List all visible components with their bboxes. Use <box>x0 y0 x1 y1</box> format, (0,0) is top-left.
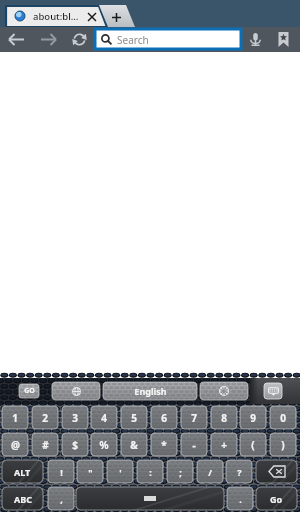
button[interactable]: 2 <box>32 406 58 429</box>
staticText: 1 <box>12 411 18 425</box>
staticText: about:bl… <box>33 10 79 23</box>
button[interactable] <box>200 382 248 400</box>
staticText: # <box>42 438 49 452</box>
staticText: Search <box>117 33 149 47</box>
button[interactable]: Voice search <box>243 27 268 52</box>
button[interactable]: Reload <box>67 27 92 52</box>
staticText: * <box>161 438 167 452</box>
staticText: GO <box>24 386 35 396</box>
button[interactable]: Hide keyboard <box>264 383 282 399</box>
button[interactable]: New tab <box>99 5 135 27</box>
button[interactable]: & <box>121 433 147 456</box>
staticText: " <box>88 466 93 478</box>
staticText: ? <box>237 466 242 478</box>
button[interactable]: ( <box>240 433 266 456</box>
button[interactable]: " <box>77 460 103 483</box>
staticText: ; <box>179 466 182 478</box>
button[interactable]: : <box>137 460 163 483</box>
staticText: $ <box>72 438 78 452</box>
button[interactable]: Bookmarks <box>271 27 296 52</box>
button[interactable]: 3 <box>62 406 88 429</box>
button[interactable]: 0 <box>270 406 296 429</box>
staticText: @ <box>11 438 20 452</box>
staticText: ' <box>119 466 122 478</box>
button[interactable]: * <box>151 433 177 456</box>
button[interactable]: English <box>103 382 197 400</box>
staticText: 0 <box>280 411 286 425</box>
staticText: & <box>130 438 138 452</box>
staticText: ) <box>281 438 285 452</box>
staticText: 3 <box>72 411 78 425</box>
button[interactable]: 9 <box>240 406 266 429</box>
button[interactable]: ABC <box>2 487 43 510</box>
button[interactable]: Forward <box>36 27 61 52</box>
button[interactable]: 8 <box>211 406 237 429</box>
button[interactable]: $ <box>62 433 88 456</box>
button[interactable]: + <box>211 433 237 456</box>
staticText: + <box>221 438 227 452</box>
staticText: / <box>208 466 212 478</box>
button[interactable]: ) <box>270 433 296 456</box>
staticText: 2 <box>42 411 48 425</box>
button[interactable]: - <box>181 433 207 456</box>
button[interactable]: ALT <box>2 460 43 483</box>
staticText: 4 <box>101 411 107 425</box>
button[interactable]: . <box>227 487 253 510</box>
staticText: English <box>134 385 167 397</box>
button[interactable]: @ <box>2 433 28 456</box>
staticText: ALT <box>14 466 31 478</box>
button[interactable]: ' <box>107 460 133 483</box>
button[interactable]: Back <box>4 27 29 52</box>
staticText: ( <box>251 438 255 452</box>
button[interactable]: # <box>32 433 58 456</box>
button[interactable]: Search <box>95 29 241 49</box>
button[interactable]: about:bl… <box>5 5 108 27</box>
button[interactable]: ; <box>167 460 193 483</box>
button[interactable]: GO <box>19 384 39 398</box>
staticText: ! <box>60 466 63 478</box>
button[interactable]: / <box>197 460 223 483</box>
staticText: ABC <box>14 493 32 505</box>
button[interactable]: , <box>48 487 74 510</box>
button[interactable] <box>256 460 297 483</box>
staticText: 6 <box>161 411 167 425</box>
staticText: , <box>60 493 63 505</box>
button[interactable]: 6 <box>151 406 177 429</box>
button[interactable]: ? <box>226 460 252 483</box>
button[interactable]: 4 <box>91 406 117 429</box>
staticText: 9 <box>250 411 256 425</box>
staticText: Go <box>270 493 283 505</box>
staticText: . <box>239 493 242 505</box>
button[interactable]: % <box>91 433 117 456</box>
button[interactable]: 1 <box>2 406 28 429</box>
staticText: 7 <box>191 411 197 425</box>
staticText: % <box>99 438 109 452</box>
staticText: 5 <box>131 411 137 425</box>
button[interactable]: 5 <box>121 406 147 429</box>
staticText: - <box>192 438 196 452</box>
staticText: : <box>149 466 152 478</box>
button[interactable] <box>52 382 100 400</box>
button[interactable] <box>76 487 224 510</box>
staticText: 8 <box>221 411 227 425</box>
button[interactable]: 7 <box>181 406 207 429</box>
button[interactable]: ! <box>48 460 74 483</box>
button[interactable]: Go <box>256 487 297 510</box>
